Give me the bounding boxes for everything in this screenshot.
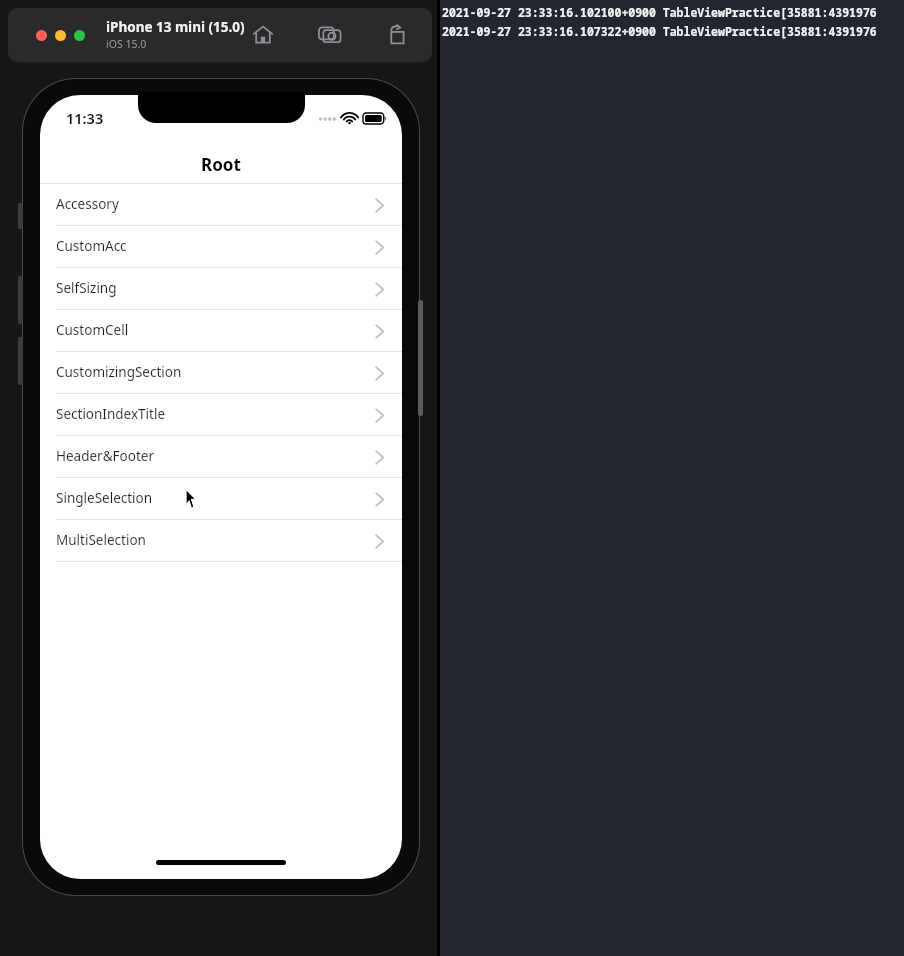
button[interactable]: MultiSelection xyxy=(40,520,402,562)
button[interactable]: Header&Footer xyxy=(40,436,402,478)
button[interactable]: Home xyxy=(252,24,274,46)
staticText: SelfSizing xyxy=(56,279,117,297)
button[interactable]: Record screen xyxy=(386,24,408,46)
button[interactable]: SectionIndexTitle xyxy=(40,394,402,436)
button[interactable]: SelfSizing xyxy=(40,268,402,310)
button[interactable]: Accessory xyxy=(40,184,402,226)
button[interactable]: CustomizingSection xyxy=(40,352,402,394)
staticText: iOS 15.0 xyxy=(106,37,147,51)
button[interactable]: Screenshot xyxy=(318,25,342,45)
button[interactable]: CustomCell xyxy=(40,310,402,352)
staticText: iPhone 13 mini (15.0) xyxy=(106,18,245,36)
staticText: CustomizingSection xyxy=(56,363,182,381)
staticText: 11:33 xyxy=(66,108,104,128)
staticText: SingleSelection xyxy=(56,489,153,507)
button[interactable]: SingleSelection xyxy=(40,478,402,520)
staticText: Header&Footer xyxy=(56,447,154,465)
staticText: CustomAcc xyxy=(56,237,127,255)
staticText: Accessory xyxy=(56,195,119,213)
staticText: 2021-09-27 23:33:16.107322+0900 TableVie… xyxy=(442,24,877,40)
button[interactable]: CustomAcc xyxy=(40,226,402,268)
staticText: CustomCell xyxy=(56,321,129,339)
staticText: 2021-09-27 23:33:16.102100+0900 TableVie… xyxy=(442,5,877,21)
staticText: Root xyxy=(201,153,241,176)
staticText: MultiSelection xyxy=(56,531,146,549)
staticText: SectionIndexTitle xyxy=(56,405,166,423)
